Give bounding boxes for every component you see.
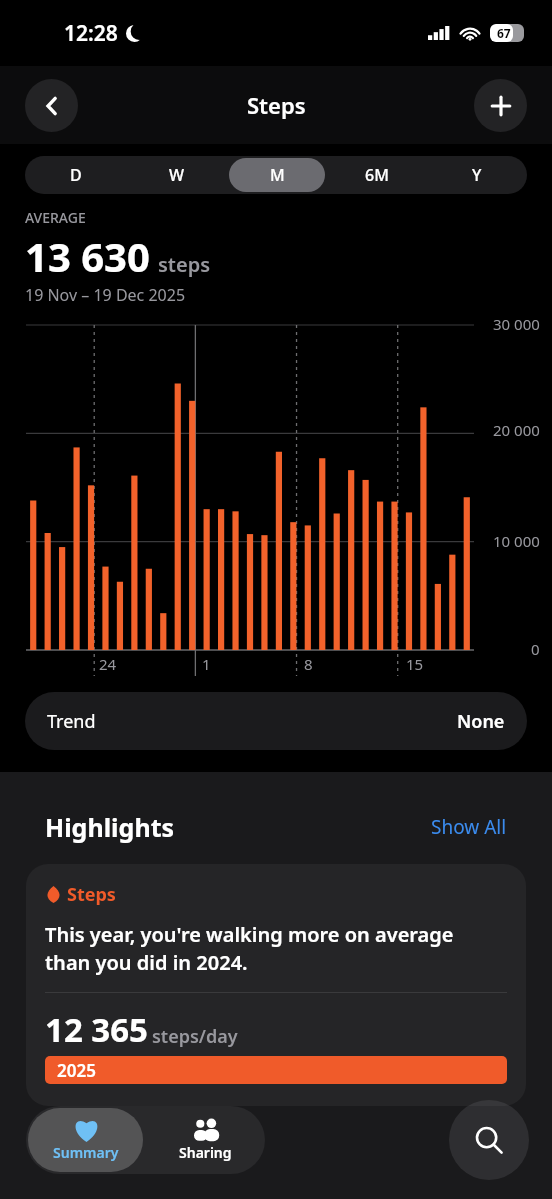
staticText: 20 000: [493, 420, 540, 440]
button[interactable]: Trend: [25, 692, 527, 750]
staticText: Y: [472, 164, 482, 186]
button[interactable]: 6M: [329, 158, 425, 192]
staticText: 15: [406, 654, 424, 674]
button[interactable]: Y: [429, 158, 525, 192]
staticText: Trend: [47, 709, 96, 734]
staticText: W: [169, 164, 185, 186]
staticText: 12:28: [64, 19, 118, 48]
staticText: 0: [531, 639, 540, 659]
button[interactable]: W: [128, 158, 225, 192]
staticText: This year, you're walking more on averag…: [45, 921, 454, 976]
button[interactable]: Back: [25, 79, 78, 132]
staticText: 67: [497, 25, 511, 41]
button[interactable]: Add: [474, 79, 527, 132]
staticText: D: [70, 164, 82, 186]
staticText: 1: [202, 654, 211, 674]
staticText: 8: [304, 654, 313, 674]
staticText: Steps: [67, 882, 116, 907]
staticText: None: [457, 709, 505, 734]
staticText: M: [270, 164, 285, 186]
staticText: Steps: [247, 90, 306, 120]
button[interactable]: Steps: [26, 864, 526, 1106]
staticText: 24: [99, 654, 117, 674]
button[interactable]: Show All: [431, 814, 507, 840]
staticText: AVERAGE: [25, 208, 86, 227]
button[interactable]: D: [27, 158, 124, 192]
staticText: Sharing: [179, 1143, 232, 1162]
button[interactable]: M: [229, 158, 325, 192]
staticText: 19 Nov – 19 Dec 2025: [25, 284, 186, 306]
staticText: 13 630: [25, 229, 150, 283]
staticText: steps: [158, 251, 211, 278]
staticText: Highlights: [45, 810, 175, 844]
staticText: steps/day: [152, 1024, 238, 1049]
staticText: 10 000: [493, 531, 540, 551]
button[interactable]: Search: [449, 1100, 529, 1180]
button[interactable]: Summary: [28, 1108, 143, 1172]
staticText: Summary: [53, 1143, 119, 1162]
staticText: Show All: [431, 814, 507, 840]
button[interactable]: Sharing: [145, 1106, 265, 1174]
staticText: 30 000: [493, 314, 540, 334]
staticText: 12 365: [45, 1007, 148, 1052]
staticText: 6M: [365, 164, 389, 186]
staticText: 2025: [57, 1059, 96, 1082]
